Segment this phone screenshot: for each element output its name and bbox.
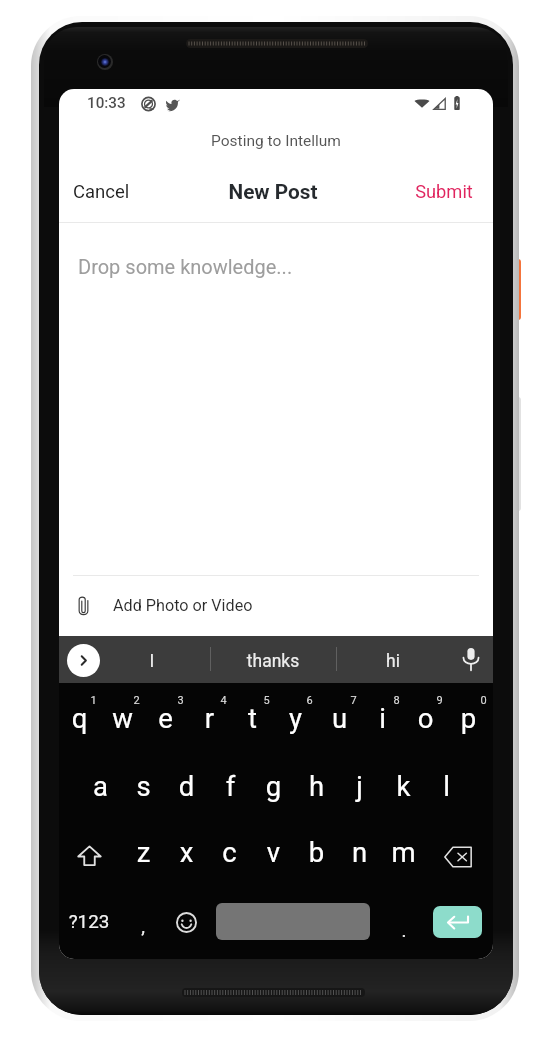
button[interactable] [146, 683, 189, 752]
button[interactable] [254, 821, 297, 890]
staticText: a [79, 770, 122, 802]
button[interactable]: Space [216, 903, 370, 940]
staticText: 3 [159, 694, 202, 707]
staticText: 10:33 [87, 94, 126, 112]
button[interactable]: Expand suggestions [59, 636, 110, 683]
staticText: Cancel [73, 181, 130, 203]
staticText: w [101, 702, 144, 734]
button[interactable] [297, 821, 340, 890]
button[interactable]: I [118, 636, 210, 683]
button[interactable]: Backspace [428, 821, 493, 890]
staticText: 5 [245, 694, 288, 707]
staticText: Submit [390, 181, 493, 202]
button[interactable]: Cancel [59, 173, 199, 223]
button[interactable]: , [121, 890, 169, 959]
staticText: d [165, 770, 208, 802]
staticText: 1 [72, 694, 115, 707]
button[interactable]: ?123 [59, 890, 121, 959]
staticText: z [122, 836, 165, 868]
staticText: thanks [211, 651, 335, 672]
button[interactable] [165, 752, 208, 821]
button[interactable] [449, 683, 492, 752]
staticText: n [338, 836, 381, 868]
button[interactable] [232, 683, 275, 752]
staticText: 9 [418, 694, 461, 707]
button[interactable]: hi [337, 636, 449, 683]
button[interactable] [252, 752, 295, 821]
staticText: b [295, 836, 338, 868]
button[interactable] [384, 821, 427, 890]
staticText: 4 [202, 694, 245, 707]
button[interactable] [167, 821, 210, 890]
staticText: o [404, 702, 447, 734]
staticText: I [106, 651, 198, 672]
staticText: e [144, 702, 187, 734]
button[interactable]: Voice input [449, 636, 493, 683]
button[interactable] [340, 821, 383, 890]
button[interactable]: Submit [353, 173, 493, 223]
staticText: m [382, 836, 425, 868]
button[interactable] [338, 752, 381, 821]
staticText: hi [337, 651, 449, 672]
staticText: l [425, 770, 468, 802]
button[interactable]: Add Photo or Video [59, 576, 493, 636]
button[interactable] [79, 752, 122, 821]
button[interactable]: Shift [59, 821, 124, 890]
staticText: k [382, 770, 425, 802]
staticText: r [188, 702, 231, 734]
button[interactable] [189, 683, 232, 752]
button[interactable] [211, 821, 254, 890]
button[interactable] [425, 752, 468, 821]
button[interactable] [295, 752, 338, 821]
button[interactable] [319, 683, 362, 752]
staticText: 7 [332, 694, 375, 707]
staticText: q [59, 702, 101, 734]
staticText: Drop some knowledge... [78, 255, 293, 278]
staticText: 8 [375, 694, 418, 707]
staticText: p [447, 702, 490, 734]
button[interactable] [102, 683, 145, 752]
button[interactable] [362, 683, 405, 752]
button[interactable] [382, 752, 425, 821]
staticText: u [318, 702, 361, 734]
button[interactable]: New Post [199, 173, 353, 223]
staticText: g [252, 770, 295, 802]
staticText: New Post [196, 180, 350, 204]
staticText: 6 [288, 694, 331, 707]
staticText: s [122, 770, 165, 802]
staticText: j [338, 770, 381, 802]
button[interactable] [209, 752, 252, 821]
staticText: v [252, 836, 295, 868]
button[interactable] [276, 683, 319, 752]
staticText: y [274, 702, 317, 734]
staticText: c [208, 836, 251, 868]
button[interactable]: Enter [433, 906, 482, 938]
button[interactable]: Emoji [169, 890, 221, 959]
staticText: i [361, 702, 404, 734]
staticText: 0 [462, 694, 493, 707]
staticText: . [381, 919, 427, 941]
staticText: , [121, 915, 165, 937]
button[interactable] [59, 683, 102, 752]
staticText: f [209, 770, 252, 802]
staticText: t [231, 702, 274, 734]
button[interactable] [122, 752, 165, 821]
button[interactable]: thanks [211, 636, 336, 683]
button[interactable] [124, 821, 167, 890]
staticText: ?123 [59, 911, 119, 933]
staticText: x [165, 836, 208, 868]
staticText: h [295, 770, 338, 802]
staticText: Add Photo or Video [113, 596, 253, 615]
button[interactable] [405, 683, 448, 752]
button[interactable]: . [372, 890, 418, 959]
staticText: 2 [115, 694, 158, 707]
staticText: Posting to Intellum [166, 132, 386, 150]
